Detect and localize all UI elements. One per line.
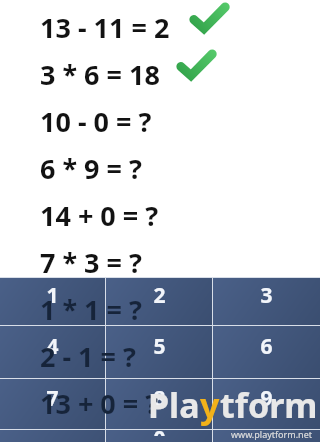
button[interactable]: 7 (0, 379, 105, 429)
staticText: 7 (46, 384, 59, 413)
button[interactable]: 6 (213, 326, 320, 378)
staticText: 6 (260, 332, 273, 361)
button[interactable] (213, 430, 320, 442)
staticText: 6 * 9 = ? (40, 150, 142, 187)
button[interactable]: 1 (0, 278, 105, 325)
staticText: 2 - 1 = ? (40, 338, 136, 375)
button[interactable]: 0 (106, 430, 212, 442)
staticText: 2 (153, 281, 166, 310)
button[interactable]: 5 (106, 326, 212, 378)
button[interactable]: 8 (106, 379, 212, 429)
staticText: 13 + 0 = ? (40, 385, 159, 422)
staticText: 0 (153, 424, 166, 436)
staticText: 1 * 1 = ? (40, 291, 142, 328)
other: Playtform watermark (148, 382, 318, 440)
button[interactable]: 4 (0, 326, 105, 378)
staticText: 14 + 0 = ? (40, 197, 159, 234)
button[interactable]: 3 (213, 278, 320, 325)
button[interactable]: 2 (106, 278, 212, 325)
staticText: 13 + 0 = ? (40, 385, 159, 422)
staticText: 1 (46, 281, 59, 310)
staticText: 9 (260, 384, 273, 413)
staticText: 5 (153, 332, 166, 361)
staticText: y (200, 382, 220, 428)
staticText: www.playtform.net (231, 428, 312, 440)
staticText: 2 - 1 = ? (40, 338, 136, 375)
staticText: 10 - 0 = ? (40, 103, 152, 140)
staticText: tform (220, 382, 318, 428)
staticText: 7 * 3 = ? (40, 244, 142, 281)
staticText: 1 * 1 = ? (40, 291, 142, 328)
staticText: 3 (260, 281, 273, 310)
button[interactable]: 9 (213, 379, 320, 429)
staticText: 3 * 6 = 18 (40, 56, 160, 93)
button[interactable] (0, 430, 105, 442)
staticText: 8 (153, 384, 166, 413)
staticText: 4 (46, 332, 59, 361)
staticText: Pla (148, 382, 200, 428)
staticText: 13 - 11 = 2 (40, 9, 170, 46)
